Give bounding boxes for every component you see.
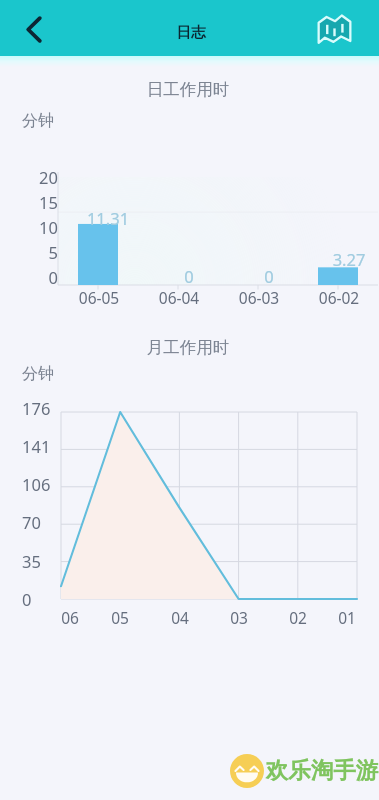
staticText: 176 xyxy=(22,397,78,419)
button[interactable]: Back xyxy=(10,5,58,53)
staticText: 11.31 xyxy=(73,207,143,229)
staticText: 0 xyxy=(14,266,58,288)
staticText: 0 xyxy=(249,265,289,287)
staticText: 05 xyxy=(98,607,142,628)
staticText: 106 xyxy=(22,473,78,495)
staticText: 01 xyxy=(325,607,369,628)
button[interactable]: Map xyxy=(310,5,358,53)
staticText: 06-03 xyxy=(219,287,299,308)
staticText: 35 xyxy=(22,550,78,572)
staticText: 日志 xyxy=(151,23,231,41)
staticText: 月工作用时 xyxy=(108,337,268,358)
staticText: 20 xyxy=(14,166,58,188)
staticText: 141 xyxy=(22,435,78,457)
staticText: 日工作用时 xyxy=(108,79,268,100)
staticText: 03 xyxy=(217,607,261,628)
staticText: 0 xyxy=(169,265,209,287)
staticText: 06 xyxy=(48,607,92,628)
staticText: 0 xyxy=(22,588,78,610)
staticText: 06-02 xyxy=(299,287,379,308)
staticText: 分钟 xyxy=(8,364,68,384)
staticText: 04 xyxy=(158,607,202,628)
staticText: 02 xyxy=(276,607,320,628)
staticText: 分钟 xyxy=(8,111,68,131)
staticText: 欢乐淘手游 xyxy=(252,756,379,784)
staticText: 06-04 xyxy=(139,287,219,308)
staticText: 70 xyxy=(22,511,78,533)
staticText: 06-05 xyxy=(59,287,139,308)
staticText: 5 xyxy=(14,241,58,263)
staticText: 15 xyxy=(14,191,58,213)
staticText: 10 xyxy=(14,216,58,238)
staticText: 3.27 xyxy=(319,248,379,270)
